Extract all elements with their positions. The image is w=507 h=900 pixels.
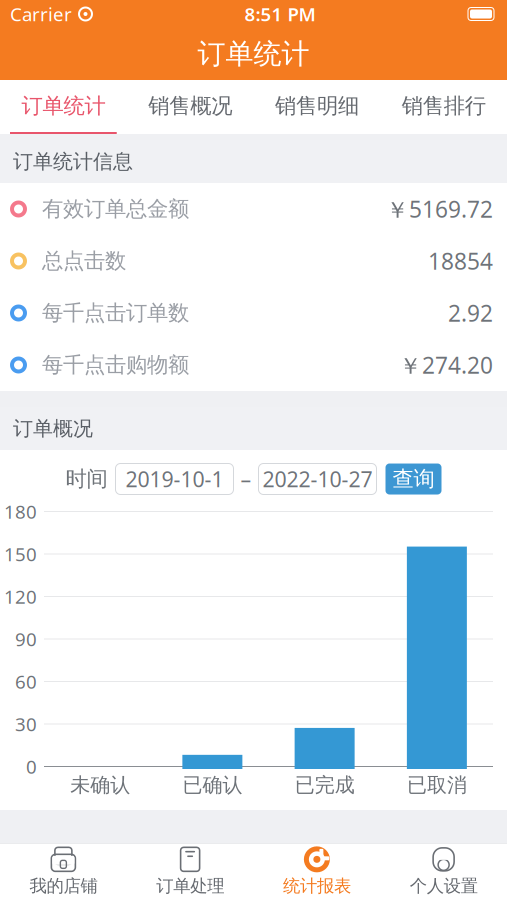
staticText: –: [240, 465, 251, 493]
button[interactable]: 查询: [385, 463, 441, 494]
staticText: 销售概况: [148, 93, 232, 119]
staticText: 2.92: [448, 298, 493, 328]
staticText: 销售明细: [275, 93, 359, 119]
staticText: 120: [4, 584, 37, 609]
staticText: 有效订单总金额: [42, 196, 189, 222]
button[interactable]: 订单处理: [127, 843, 254, 900]
button[interactable]: 有效订单总金额: [0, 183, 507, 235]
staticText: 180: [4, 499, 37, 524]
staticText: 每千点击订单数: [42, 300, 189, 326]
staticText: 已确认: [182, 773, 242, 797]
staticText: 90: [15, 627, 37, 651]
button[interactable]: 2019-10-1: [115, 463, 233, 494]
staticText: 总点击数: [42, 248, 126, 274]
button[interactable]: 销售明细: [253, 80, 380, 134]
staticText: 我的店铺: [29, 875, 97, 897]
staticText: 订单统计: [21, 93, 105, 119]
staticText: 150: [4, 542, 37, 566]
staticText: 已完成: [295, 773, 355, 797]
staticText: 销售排行: [402, 93, 486, 119]
button[interactable]: 销售排行: [380, 80, 507, 134]
button[interactable]: 统计报表: [253, 843, 380, 900]
button[interactable]: 每千点击订单数: [0, 287, 507, 339]
button[interactable]: 我的店铺: [0, 843, 127, 900]
staticText: 每千点击购物额: [42, 352, 189, 378]
button[interactable]: 销售概况: [127, 80, 254, 134]
staticText: 统计报表: [283, 875, 351, 897]
staticText: 60: [15, 669, 37, 694]
staticText: 个人设置: [410, 875, 478, 897]
staticText: 未确认: [70, 773, 130, 797]
button[interactable]: 个人设置: [380, 843, 507, 900]
button[interactable]: 总点击数: [0, 235, 507, 287]
staticText: 订单概况: [13, 416, 93, 441]
staticText: ￥5169.72: [386, 194, 493, 224]
staticText: 查询: [392, 466, 434, 492]
staticText: 订单处理: [156, 875, 224, 897]
staticText: 30: [15, 712, 37, 736]
staticText: 18854: [428, 246, 493, 276]
button[interactable]: 订单统计: [0, 80, 127, 134]
staticText: 8:51 PM: [244, 2, 315, 26]
staticText: 2022-10-27: [262, 465, 372, 493]
staticText: ￥274.20: [399, 350, 493, 380]
staticText: 订单统计: [197, 37, 309, 71]
staticText: 2019-10-1: [125, 465, 223, 493]
button[interactable]: 每千点击购物额: [0, 339, 507, 391]
staticText: 时间: [65, 466, 107, 492]
staticText: 0: [26, 754, 37, 779]
button[interactable]: 2022-10-27: [258, 463, 376, 494]
staticText: 订单统计信息: [13, 149, 133, 174]
staticText: 已取消: [407, 773, 467, 797]
staticText: Carrier: [10, 2, 72, 26]
